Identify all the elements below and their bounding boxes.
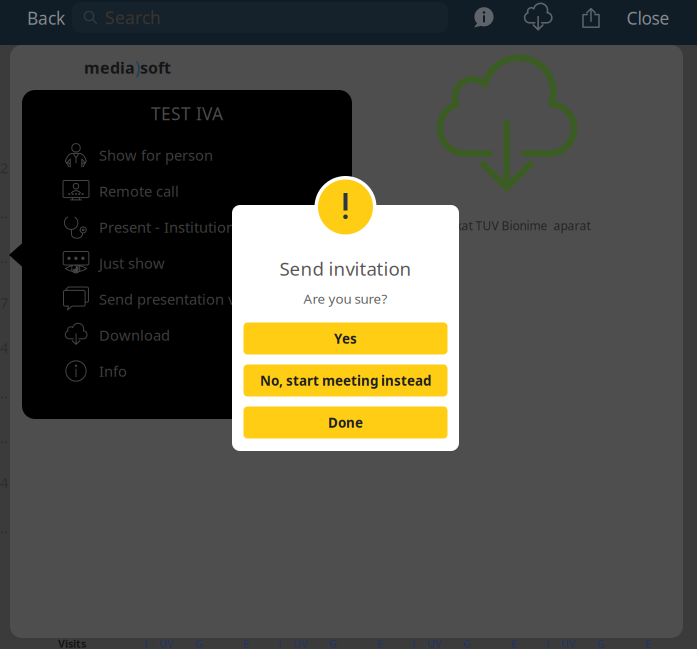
staticText: E — [645, 636, 651, 649]
staticText: Back — [27, 6, 65, 29]
staticText: UV — [159, 636, 173, 649]
staticText: G — [195, 636, 203, 649]
staticText: G — [597, 636, 605, 649]
button[interactable]: Download — [510, 0, 566, 36]
staticText: Visits — [58, 636, 86, 649]
staticText: 4 — [0, 338, 8, 357]
staticText: UV — [561, 636, 575, 649]
staticText: I — [546, 636, 550, 649]
button[interactable]: Close — [616, 0, 680, 36]
staticText: hu — [0, 203, 12, 222]
staticText: I — [412, 636, 416, 649]
staticText: No, start meeting instead — [260, 372, 431, 389]
button[interactable]: Info — [458, 0, 510, 36]
staticText: Done — [328, 414, 363, 431]
staticText: Certifikat TUV Bionime aparat — [421, 218, 590, 234]
staticText: Are you sure? — [303, 290, 387, 307]
staticText: 28 — [0, 428, 12, 447]
staticText: I — [144, 636, 148, 649]
staticText: Just show — [99, 253, 165, 273]
staticText: G — [463, 636, 471, 649]
staticText: 2 — [0, 158, 8, 177]
staticText: ) — [135, 56, 140, 79]
staticText: G — [329, 636, 337, 649]
staticText: Show for person — [99, 145, 213, 165]
staticText: 4 — [0, 473, 8, 492]
staticText: soft — [140, 57, 171, 78]
staticText: Download — [99, 325, 170, 345]
button[interactable]: Download — [22, 317, 352, 353]
button[interactable]: Send presentation via chat — [22, 281, 352, 317]
staticText: Info — [99, 361, 127, 381]
button[interactable]: Present - Institution — [22, 209, 352, 245]
button[interactable]: No, start meeting instead — [243, 364, 447, 396]
staticText: UV — [293, 636, 307, 649]
button[interactable]: Just show — [22, 245, 352, 281]
staticText: Remote call — [99, 181, 179, 201]
button[interactable]: Show for person — [22, 137, 352, 173]
staticText: E — [377, 636, 383, 649]
staticText: Present - Institution — [99, 217, 235, 237]
staticText: Yes — [334, 330, 357, 347]
staticText: Close — [626, 6, 669, 29]
staticText: media — [84, 57, 135, 78]
button[interactable]: Info — [22, 353, 352, 389]
staticText: Send presentation via chat — [99, 289, 280, 309]
staticText: E — [243, 636, 249, 649]
staticText: 7 — [0, 293, 8, 312]
button[interactable]: Back — [18, 0, 74, 36]
button[interactable]: Share — [566, 0, 616, 36]
staticText: UV — [427, 636, 441, 649]
staticText: 30 — [0, 248, 12, 267]
staticText: I — [278, 636, 282, 649]
staticText: 21 — [0, 383, 12, 402]
staticText: Search — [105, 6, 161, 29]
button[interactable]: Remote call — [22, 173, 352, 209]
button[interactable]: Yes — [243, 322, 447, 354]
staticText: TEST IVA — [151, 102, 223, 125]
button[interactable]: Done — [243, 406, 447, 438]
staticText: Send invitation — [279, 256, 411, 281]
staticText: na — [0, 518, 12, 537]
staticText: E — [511, 636, 517, 649]
